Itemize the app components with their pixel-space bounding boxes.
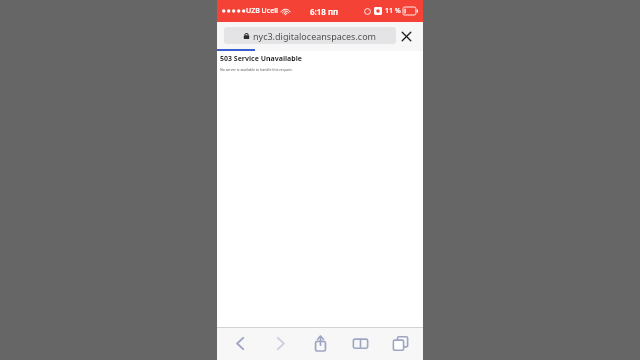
staticText: 503 Service Unavailable — [220, 54, 302, 64]
button[interactable]: Stop loading — [396, 26, 416, 46]
button[interactable]: Share — [303, 327, 337, 360]
button[interactable]: Back — [223, 327, 257, 360]
button[interactable]: Bookmarks — [343, 327, 377, 360]
staticText: nyc3.digitaloceanspaces.com — [253, 30, 377, 42]
staticText: 11 % — [385, 6, 401, 16]
button[interactable]: Forward — [263, 327, 297, 360]
button[interactable]: nyc3.digitaloceanspaces.com — [224, 27, 396, 44]
staticText: 6:18 пп — [310, 6, 339, 17]
staticText: No server is available to handle this re… — [220, 67, 293, 72]
button[interactable]: Tabs — [383, 327, 417, 360]
staticText: UZB Ucell — [246, 6, 278, 16]
